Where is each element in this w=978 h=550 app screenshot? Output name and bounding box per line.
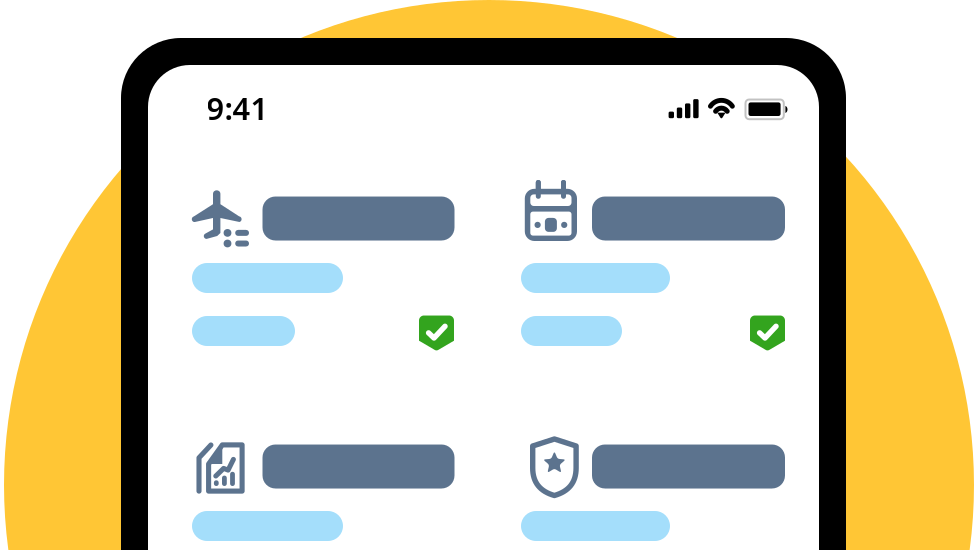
button[interactable]: Schedule [521, 190, 785, 350]
staticText: 9:41 [206, 88, 268, 128]
button[interactable]: Reports [192, 438, 454, 550]
button[interactable]: Flights [192, 190, 454, 350]
button[interactable]: Protection [521, 438, 785, 550]
